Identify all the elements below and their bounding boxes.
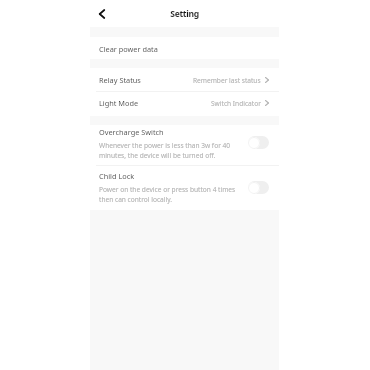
button[interactable]: Back [92, 4, 112, 24]
staticText: Overcharge Switch [99, 127, 164, 137]
button[interactable] [90, 125, 279, 165]
button[interactable]: Overcharge Switch toggle [248, 136, 269, 149]
staticText: Setting [90, 8, 279, 20]
button[interactable]: Child Lock toggle [248, 181, 269, 194]
staticText: Remember last status [193, 76, 261, 85]
staticText: Relay Status [99, 75, 141, 85]
staticText: Light Mode [99, 98, 139, 108]
staticText: Switch Indicator [211, 99, 261, 108]
button[interactable] [90, 166, 279, 210]
staticText: Whenever the power is less than 3w for 4… [99, 141, 231, 160]
staticText: Child Lock [99, 171, 135, 181]
staticText: Clear power data [99, 44, 158, 54]
button[interactable]: Clear power data [90, 38, 279, 60]
button[interactable]: Light Mode [90, 91, 279, 115]
button[interactable]: Relay Status [90, 69, 279, 91]
staticText: Power on the device or press button 4 ti… [99, 185, 236, 204]
